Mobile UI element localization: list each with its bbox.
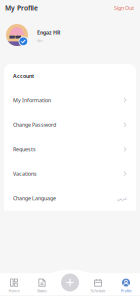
- staticText: Requests: [13, 146, 36, 153]
- staticText: عربي: [116, 195, 127, 201]
- staticText: My Profile: [5, 4, 38, 12]
- button[interactable]: Schedule: [84, 275, 112, 296]
- button[interactable]: Vacations: [4, 161, 136, 186]
- staticText: States: [37, 288, 47, 293]
- staticText: Schedule: [90, 288, 105, 293]
- button[interactable]: States: [28, 275, 56, 296]
- staticText: My Information: [13, 97, 51, 104]
- staticText: Change Language: [13, 195, 56, 202]
- button[interactable]: Profile: [112, 275, 140, 296]
- staticText: Sign Out: [114, 4, 134, 12]
- staticText: Engaz HR: [37, 29, 60, 36]
- button[interactable]: Requests: [4, 137, 136, 161]
- staticText: Home: [8, 288, 19, 293]
- button[interactable]: Home: [0, 275, 28, 296]
- button[interactable]: My Information: [4, 88, 136, 112]
- button[interactable]: Change Language: [4, 186, 136, 210]
- button[interactable]: Sign Out: [113, 3, 135, 13]
- button[interactable]: Change Password: [4, 112, 136, 137]
- staticText: Profile: [120, 288, 131, 293]
- button[interactable]: Add: [61, 273, 79, 291]
- staticText: Vacations: [13, 170, 37, 177]
- staticText: dev: [37, 38, 43, 43]
- staticText: Account: [13, 72, 34, 80]
- staticText: Change Password: [13, 121, 56, 128]
